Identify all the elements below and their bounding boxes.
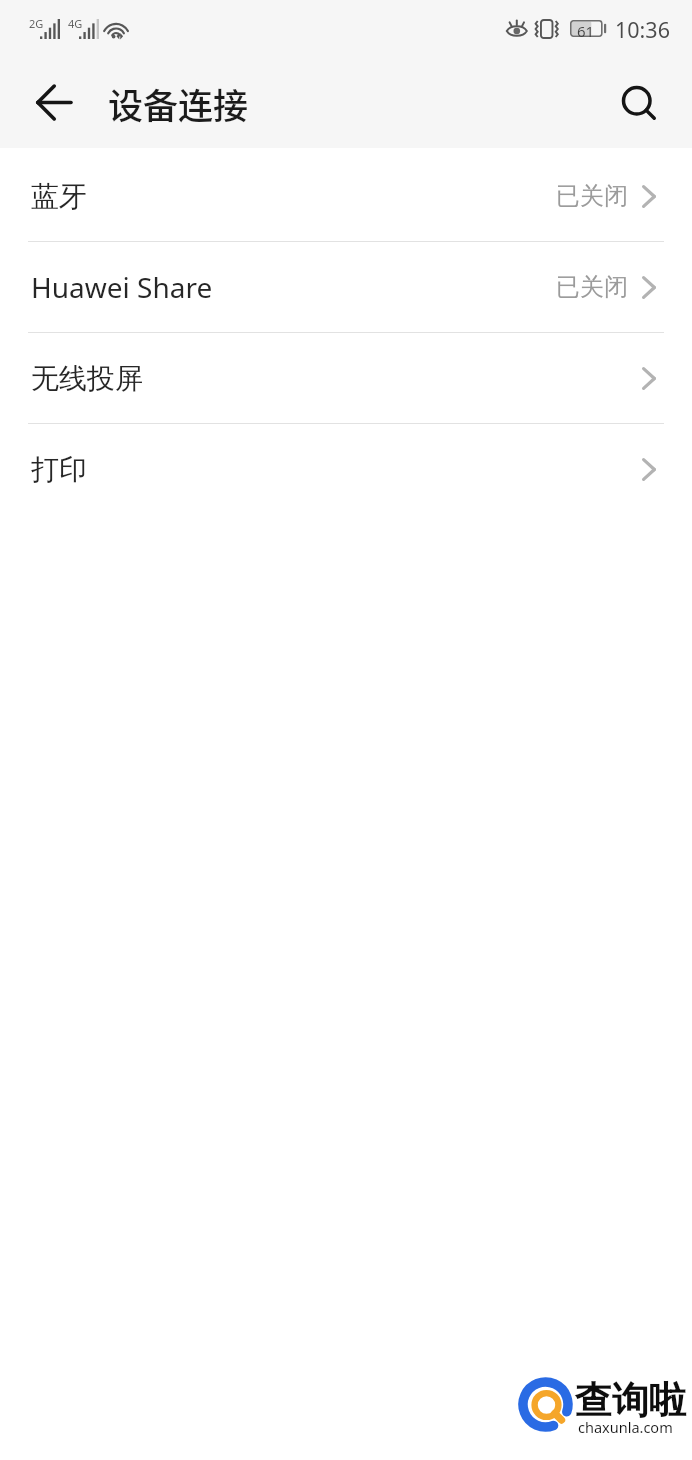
staticText: 4G [68,16,83,31]
staticText: 已关闭 [556,272,628,302]
button[interactable]: 蓝牙 [0,151,692,241]
button[interactable]: 打印 [0,424,692,514]
button[interactable]: Back [8,57,98,147]
staticText: 蓝牙 [31,179,87,214]
button[interactable]: Search [593,57,683,147]
staticText: 61 [577,21,595,38]
button[interactable]: 无线投屏 [0,333,692,423]
staticText: 查询啦 [575,1377,686,1424]
staticText: 10:36 [615,15,670,44]
button[interactable]: Huawei Share [0,242,692,332]
staticText: 设备连接 [108,78,249,129]
staticText: 2G [29,16,44,31]
staticText: Huawei Share [31,268,213,306]
staticText: 已关闭 [556,181,628,211]
staticText: 打印 [31,452,87,487]
staticText: 无线投屏 [31,361,143,396]
staticText: chaxunla.com [578,1417,673,1437]
